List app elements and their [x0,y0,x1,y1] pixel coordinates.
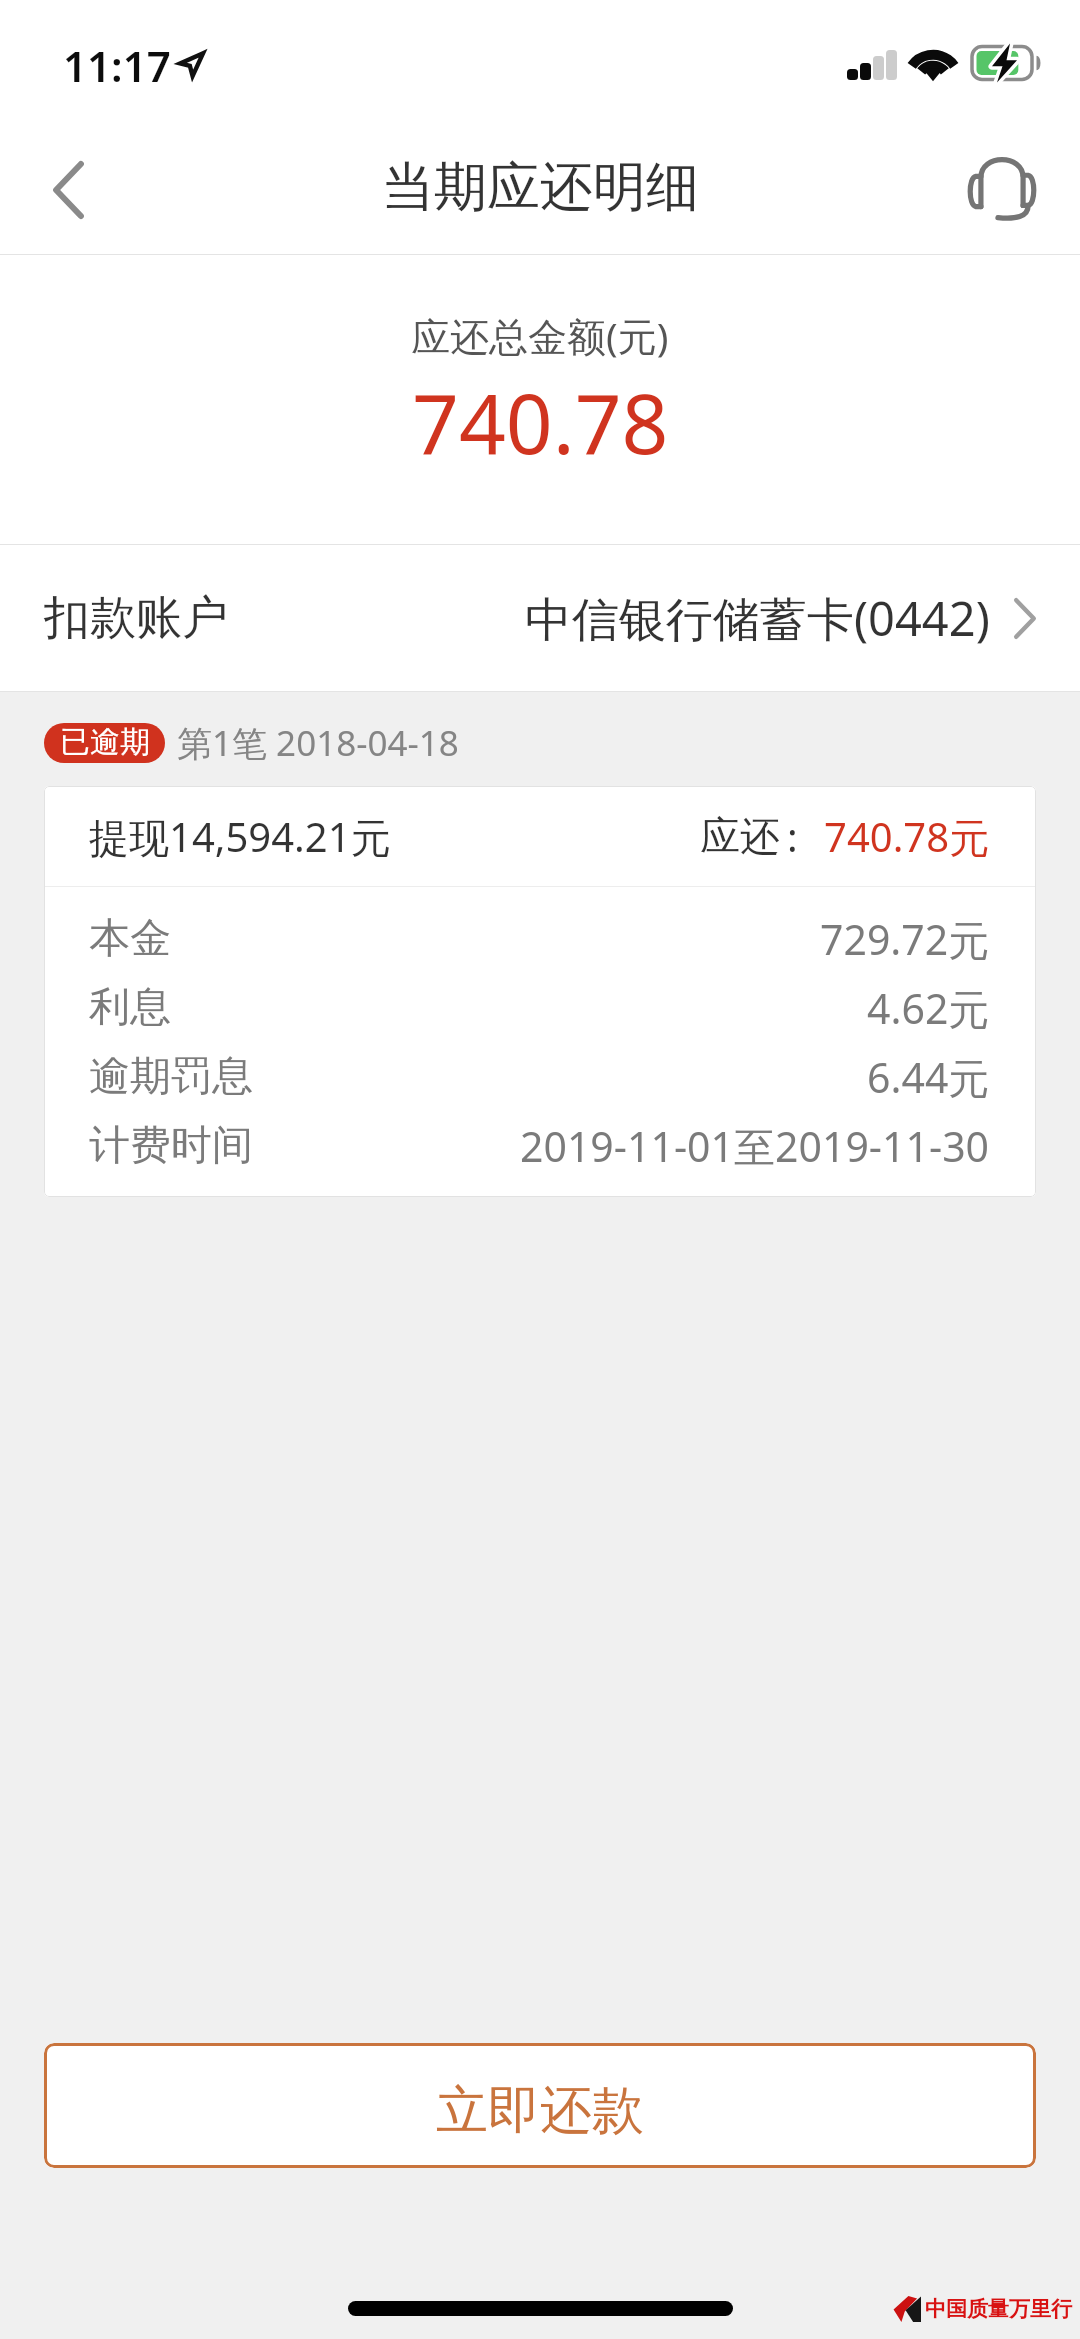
button[interactable]: Customer service [947,135,1057,245]
staticText: 逾期罚息 [89,1051,253,1103]
staticText: 立即还款 [436,2078,644,2144]
staticText: 应还 [700,811,780,861]
staticText: 6.44元 [867,1049,990,1105]
button[interactable]: Back [14,135,124,245]
staticText: : [787,809,798,863]
staticText: 应还总金额(元) [411,309,669,362]
staticText: 中信银行储蓄卡(0442) [525,586,990,650]
staticText: 4.62元 [867,980,990,1036]
staticText: 利息 [89,982,171,1034]
staticText: 中国质量万里行 [925,2296,1072,2322]
staticText: 740.78 [412,366,669,478]
staticText: 第1笔 2018-04-18 [177,719,459,767]
staticText: 729.72元 [820,911,990,967]
staticText: 740.78元 [824,809,990,864]
staticText: 2019-11-01至2019-11-30 [520,1118,990,1174]
button[interactable]: 扣款账户 [0,545,1080,691]
staticText: 11:17 [63,37,171,94]
staticText: 已逾期 [60,723,150,761]
staticText: 本金 [89,913,171,965]
staticText: 计费时间 [89,1120,253,1172]
staticText: 扣款账户 [44,589,228,647]
staticText: 当期应还明细 [381,154,699,221]
button[interactable]: 立即还款 [44,2043,1036,2168]
staticText: 提现14,594.21元 [89,809,391,864]
